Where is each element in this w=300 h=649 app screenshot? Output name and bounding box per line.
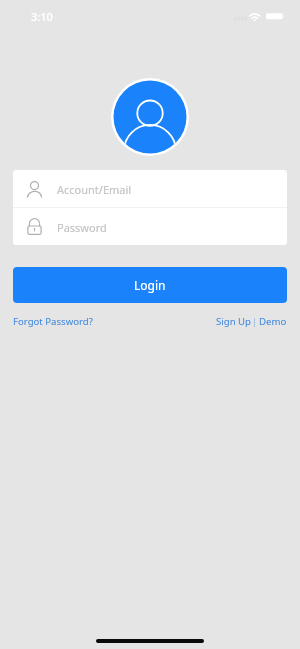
staticText: Demo <box>259 315 287 328</box>
button[interactable]: Login <box>13 267 287 303</box>
button[interactable]: Forgot Password? <box>13 315 93 328</box>
staticText: Forgot Password? <box>13 315 93 328</box>
staticText: 3:10 <box>31 9 53 24</box>
button[interactable]: Demo <box>259 315 287 328</box>
button[interactable]: Account/Email <box>13 170 287 207</box>
other: Profile avatar <box>111 78 189 156</box>
staticText: Login <box>134 277 166 293</box>
button[interactable]: Password <box>13 208 287 245</box>
staticText: Password <box>57 220 107 235</box>
staticText: Sign Up <box>216 315 251 328</box>
staticText: | <box>252 315 258 328</box>
staticText: Account/Email <box>57 182 132 197</box>
button[interactable]: Sign Up <box>216 315 251 328</box>
